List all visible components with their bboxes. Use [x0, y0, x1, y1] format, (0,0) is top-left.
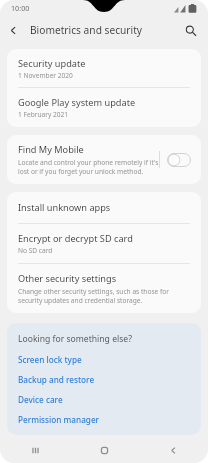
staticText: Device care — [18, 394, 63, 405]
staticText: Locate and control your phone remotely i… — [18, 158, 159, 176]
staticText: Encrypt or decrypt SD card — [18, 232, 133, 245]
button[interactable]: Encrypt or decrypt SD card — [7, 224, 201, 263]
button[interactable]: Find My Mobile toggle — [167, 151, 193, 169]
button[interactable]: Back — [0, 17, 26, 43]
staticText: Other security settings — [18, 272, 117, 285]
button[interactable]: Device care — [18, 394, 190, 405]
button[interactable]: Find My Mobile — [7, 135, 201, 184]
staticText: Biometrics and security — [30, 23, 143, 37]
staticText: 10:00 — [11, 3, 30, 13]
button[interactable]: Other security settings — [7, 264, 201, 313]
staticText: Security update — [18, 57, 86, 70]
staticText: Install unknown apps — [18, 201, 111, 214]
staticText: Permission manager — [18, 414, 100, 425]
button[interactable]: Permission manager — [18, 414, 190, 425]
staticText: 1 November 2020 — [18, 71, 73, 80]
staticText: Backup and restore — [18, 374, 95, 385]
staticText: Google Play system update — [18, 96, 136, 109]
button[interactable]: Security update — [7, 49, 201, 87]
staticText: No SD card — [18, 246, 53, 255]
button[interactable]: Search — [179, 19, 201, 41]
button[interactable]: Home — [70, 437, 139, 463]
button[interactable]: Install unknown apps — [7, 192, 201, 223]
button[interactable]: Google Play system update — [7, 88, 201, 127]
button[interactable]: Backup and restore — [18, 374, 190, 385]
button[interactable]: Screen lock type — [18, 354, 190, 365]
button[interactable]: Recents — [0, 437, 70, 463]
staticText: 1 February 2021 — [18, 110, 69, 119]
staticText: Screen lock type — [18, 354, 82, 365]
staticText: Change other security settings, such as … — [18, 287, 169, 305]
button[interactable]: Back — [139, 437, 208, 463]
staticText: Find My Mobile — [18, 143, 84, 156]
staticText: Looking for something else? — [18, 333, 132, 345]
